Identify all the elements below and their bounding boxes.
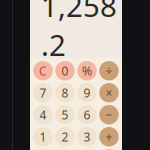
button[interactable]: C [33,61,53,80]
staticText: 4 [39,107,46,123]
staticText: 1 [39,129,46,145]
staticText: 9 [83,85,90,101]
staticText: 6 [83,107,90,123]
button[interactable]: ÷ [99,61,119,80]
staticText: 8 [61,85,68,101]
staticText: 2 [61,129,68,145]
button[interactable]: 3 [77,127,97,146]
staticText: 5 [61,107,68,123]
button[interactable]: 5 [55,105,75,124]
button[interactable]: History [34,72,48,84]
button[interactable]: 9 [77,83,97,102]
staticText: × [105,85,112,101]
button[interactable]: 8 [55,83,75,102]
button[interactable]: + [99,127,119,146]
staticText: 1,258.2 [41,0,117,64]
button[interactable]: % [77,61,97,80]
button[interactable]: 0 [55,61,75,80]
button[interactable]: . [33,149,53,150]
staticText: 3 [83,129,90,145]
button[interactable]: ± [77,149,97,150]
staticText: ÷ [105,63,112,79]
staticText: × [110,74,114,83]
staticText: + [105,129,112,145]
button[interactable]: Backspace [104,72,118,84]
button[interactable]: = [99,149,119,150]
staticText: C [39,63,47,79]
staticText: 7 [39,85,46,101]
staticText: % [82,63,92,79]
button[interactable]: 0 [55,149,75,150]
button[interactable]: 1 [33,127,53,146]
button[interactable]: × [99,83,119,102]
button[interactable]: 4 [33,105,53,124]
staticText: 0 [61,63,68,79]
button[interactable]: 7 [33,83,53,102]
button[interactable]: − [99,105,119,124]
button[interactable]: 2 [55,127,75,146]
staticText: − [105,107,112,123]
button[interactable]: 6 [77,105,97,124]
